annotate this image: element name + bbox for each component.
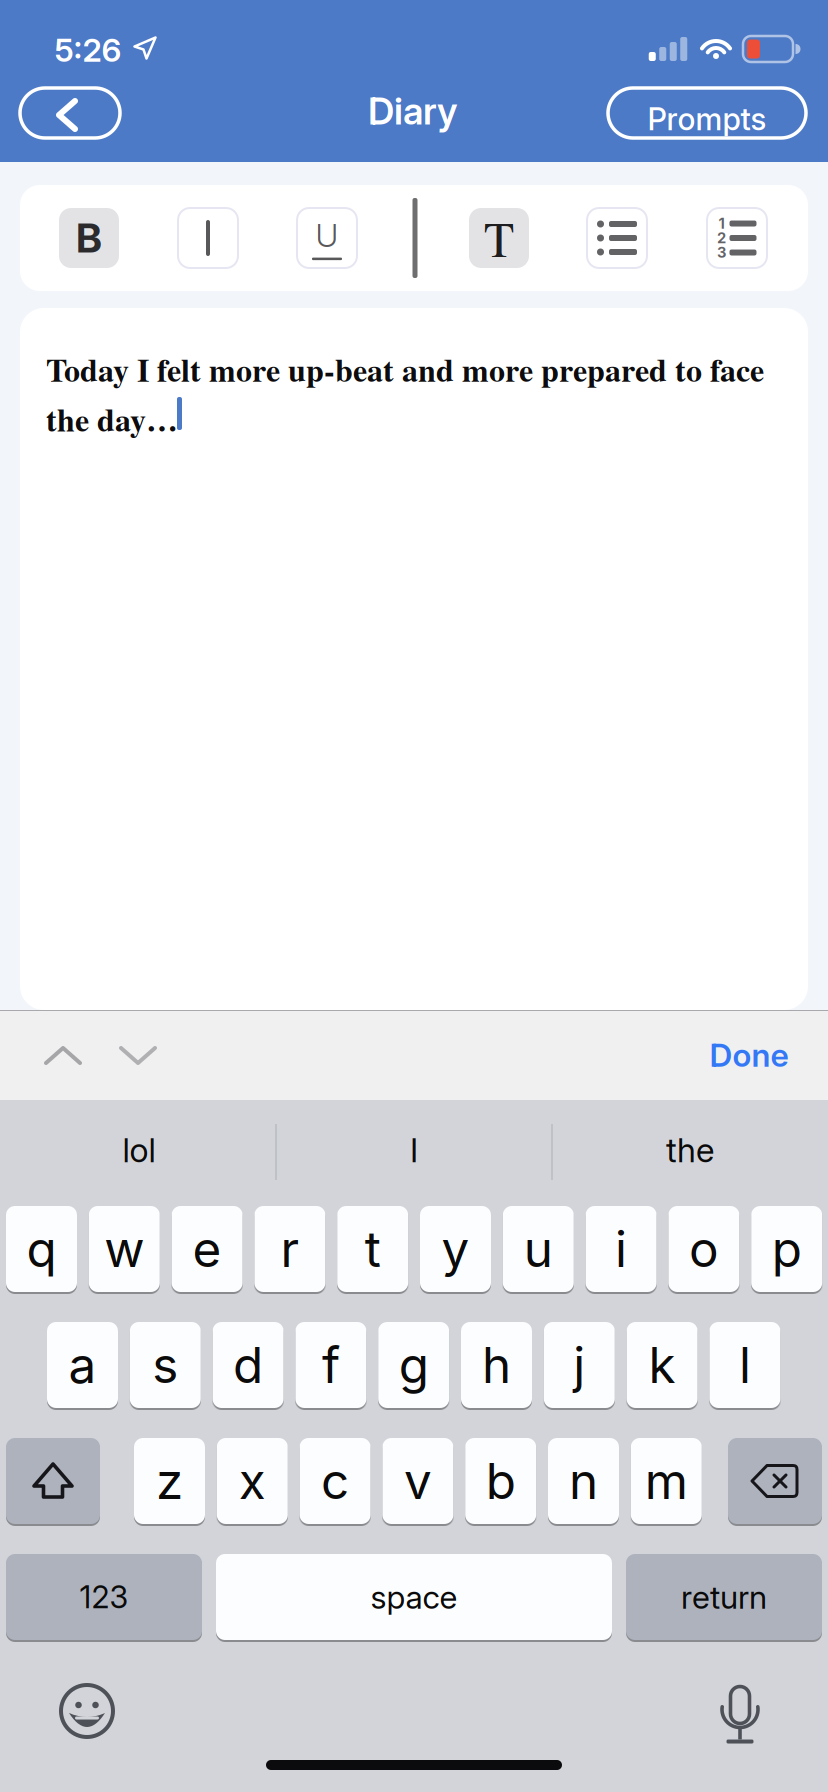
button[interactable]: Bold: [59, 208, 119, 268]
button[interactable]: Prompts: [608, 88, 806, 138]
staticText: 3: [717, 244, 726, 261]
button[interactable]: Numbered list: [707, 208, 767, 268]
staticText: s: [152, 1335, 178, 1395]
staticText: h: [482, 1335, 511, 1395]
button[interactable]: d: [213, 1322, 284, 1408]
staticText: z: [156, 1451, 183, 1511]
button[interactable]: I: [279, 1101, 549, 1199]
button[interactable]: k: [627, 1322, 698, 1408]
staticText: a: [68, 1335, 96, 1395]
staticText: y: [441, 1219, 469, 1279]
button[interactable]: space: [216, 1554, 612, 1640]
button[interactable]: lol: [4, 1101, 274, 1199]
staticText: return: [681, 1578, 767, 1616]
button[interactable]: u: [503, 1206, 574, 1292]
staticText: I: [410, 1130, 418, 1170]
button[interactable]: Shift: [6, 1438, 100, 1524]
button[interactable]: 123: [6, 1554, 202, 1640]
button[interactable]: Previous field: [42, 1044, 84, 1068]
staticText: 123: [79, 1578, 128, 1615]
staticText: m: [645, 1451, 688, 1511]
staticText: p: [772, 1219, 802, 1279]
button[interactable]: Delete: [728, 1438, 822, 1524]
button[interactable]: Done: [709, 1036, 788, 1074]
button[interactable]: l: [709, 1322, 780, 1408]
button[interactable]: Bulleted list: [587, 208, 647, 268]
staticText: v: [404, 1451, 432, 1511]
staticText: Done: [709, 1036, 788, 1074]
button[interactable]: n: [548, 1438, 619, 1524]
button[interactable]: w: [89, 1206, 160, 1292]
staticText: j: [573, 1335, 585, 1395]
staticText: l: [739, 1335, 751, 1395]
staticText: lol: [122, 1130, 155, 1170]
staticText: o: [689, 1219, 719, 1279]
button[interactable]: f: [295, 1322, 366, 1408]
button[interactable]: Italic: [178, 208, 238, 268]
staticText: k: [649, 1335, 676, 1395]
staticText: Prompts: [647, 100, 766, 137]
button[interactable]: Text style: [469, 208, 529, 268]
staticText: n: [569, 1451, 598, 1511]
button[interactable]: c: [300, 1438, 371, 1524]
button[interactable]: b: [465, 1438, 536, 1524]
staticText: u: [524, 1219, 553, 1279]
staticText: e: [193, 1219, 222, 1279]
button[interactable]: m: [631, 1438, 702, 1524]
staticText: c: [321, 1451, 349, 1511]
staticText: T: [484, 205, 514, 271]
staticText: i: [615, 1219, 627, 1279]
staticText: x: [239, 1451, 266, 1511]
button[interactable]: x: [217, 1438, 288, 1524]
staticText: 2: [717, 229, 726, 247]
staticText: 5:26: [54, 31, 121, 69]
staticText: g: [399, 1335, 429, 1395]
button[interactable]: a: [47, 1322, 118, 1408]
staticText: d: [233, 1335, 263, 1395]
button[interactable]: i: [586, 1206, 657, 1292]
staticText: t: [365, 1219, 381, 1279]
button[interactable]: t: [337, 1206, 408, 1292]
button[interactable]: p: [751, 1206, 822, 1292]
staticText: r: [280, 1219, 299, 1279]
button[interactable]: return: [626, 1554, 822, 1640]
staticText: U: [315, 216, 338, 255]
staticText: space: [370, 1578, 457, 1616]
button[interactable]: v: [382, 1438, 453, 1524]
staticText: f: [322, 1335, 340, 1395]
staticText: Today I felt more up-beat and more prepa…: [46, 346, 764, 442]
button[interactable]: j: [544, 1322, 615, 1408]
button[interactable]: Back: [20, 88, 120, 138]
button[interactable]: r: [254, 1206, 325, 1292]
button[interactable]: the: [555, 1101, 825, 1199]
staticText: w: [104, 1219, 144, 1279]
button[interactable]: Next field: [117, 1044, 159, 1068]
staticText: b: [486, 1451, 516, 1511]
button[interactable]: o: [668, 1206, 739, 1292]
staticText: the: [666, 1130, 714, 1170]
button[interactable]: Underline: [297, 208, 357, 268]
button[interactable]: e: [172, 1206, 243, 1292]
staticText: 1: [718, 215, 724, 232]
button[interactable]: y: [420, 1206, 491, 1292]
button[interactable]: Emoji: [57, 1681, 117, 1741]
staticText: q: [26, 1219, 56, 1279]
button[interactable]: q: [6, 1206, 77, 1292]
button[interactable]: s: [130, 1322, 201, 1408]
staticText: Diary: [368, 88, 458, 134]
staticText: B: [76, 214, 102, 262]
button[interactable]: z: [134, 1438, 205, 1524]
button[interactable]: g: [378, 1322, 449, 1408]
button[interactable]: h: [461, 1322, 532, 1408]
button[interactable]: Dictation: [720, 1676, 760, 1740]
